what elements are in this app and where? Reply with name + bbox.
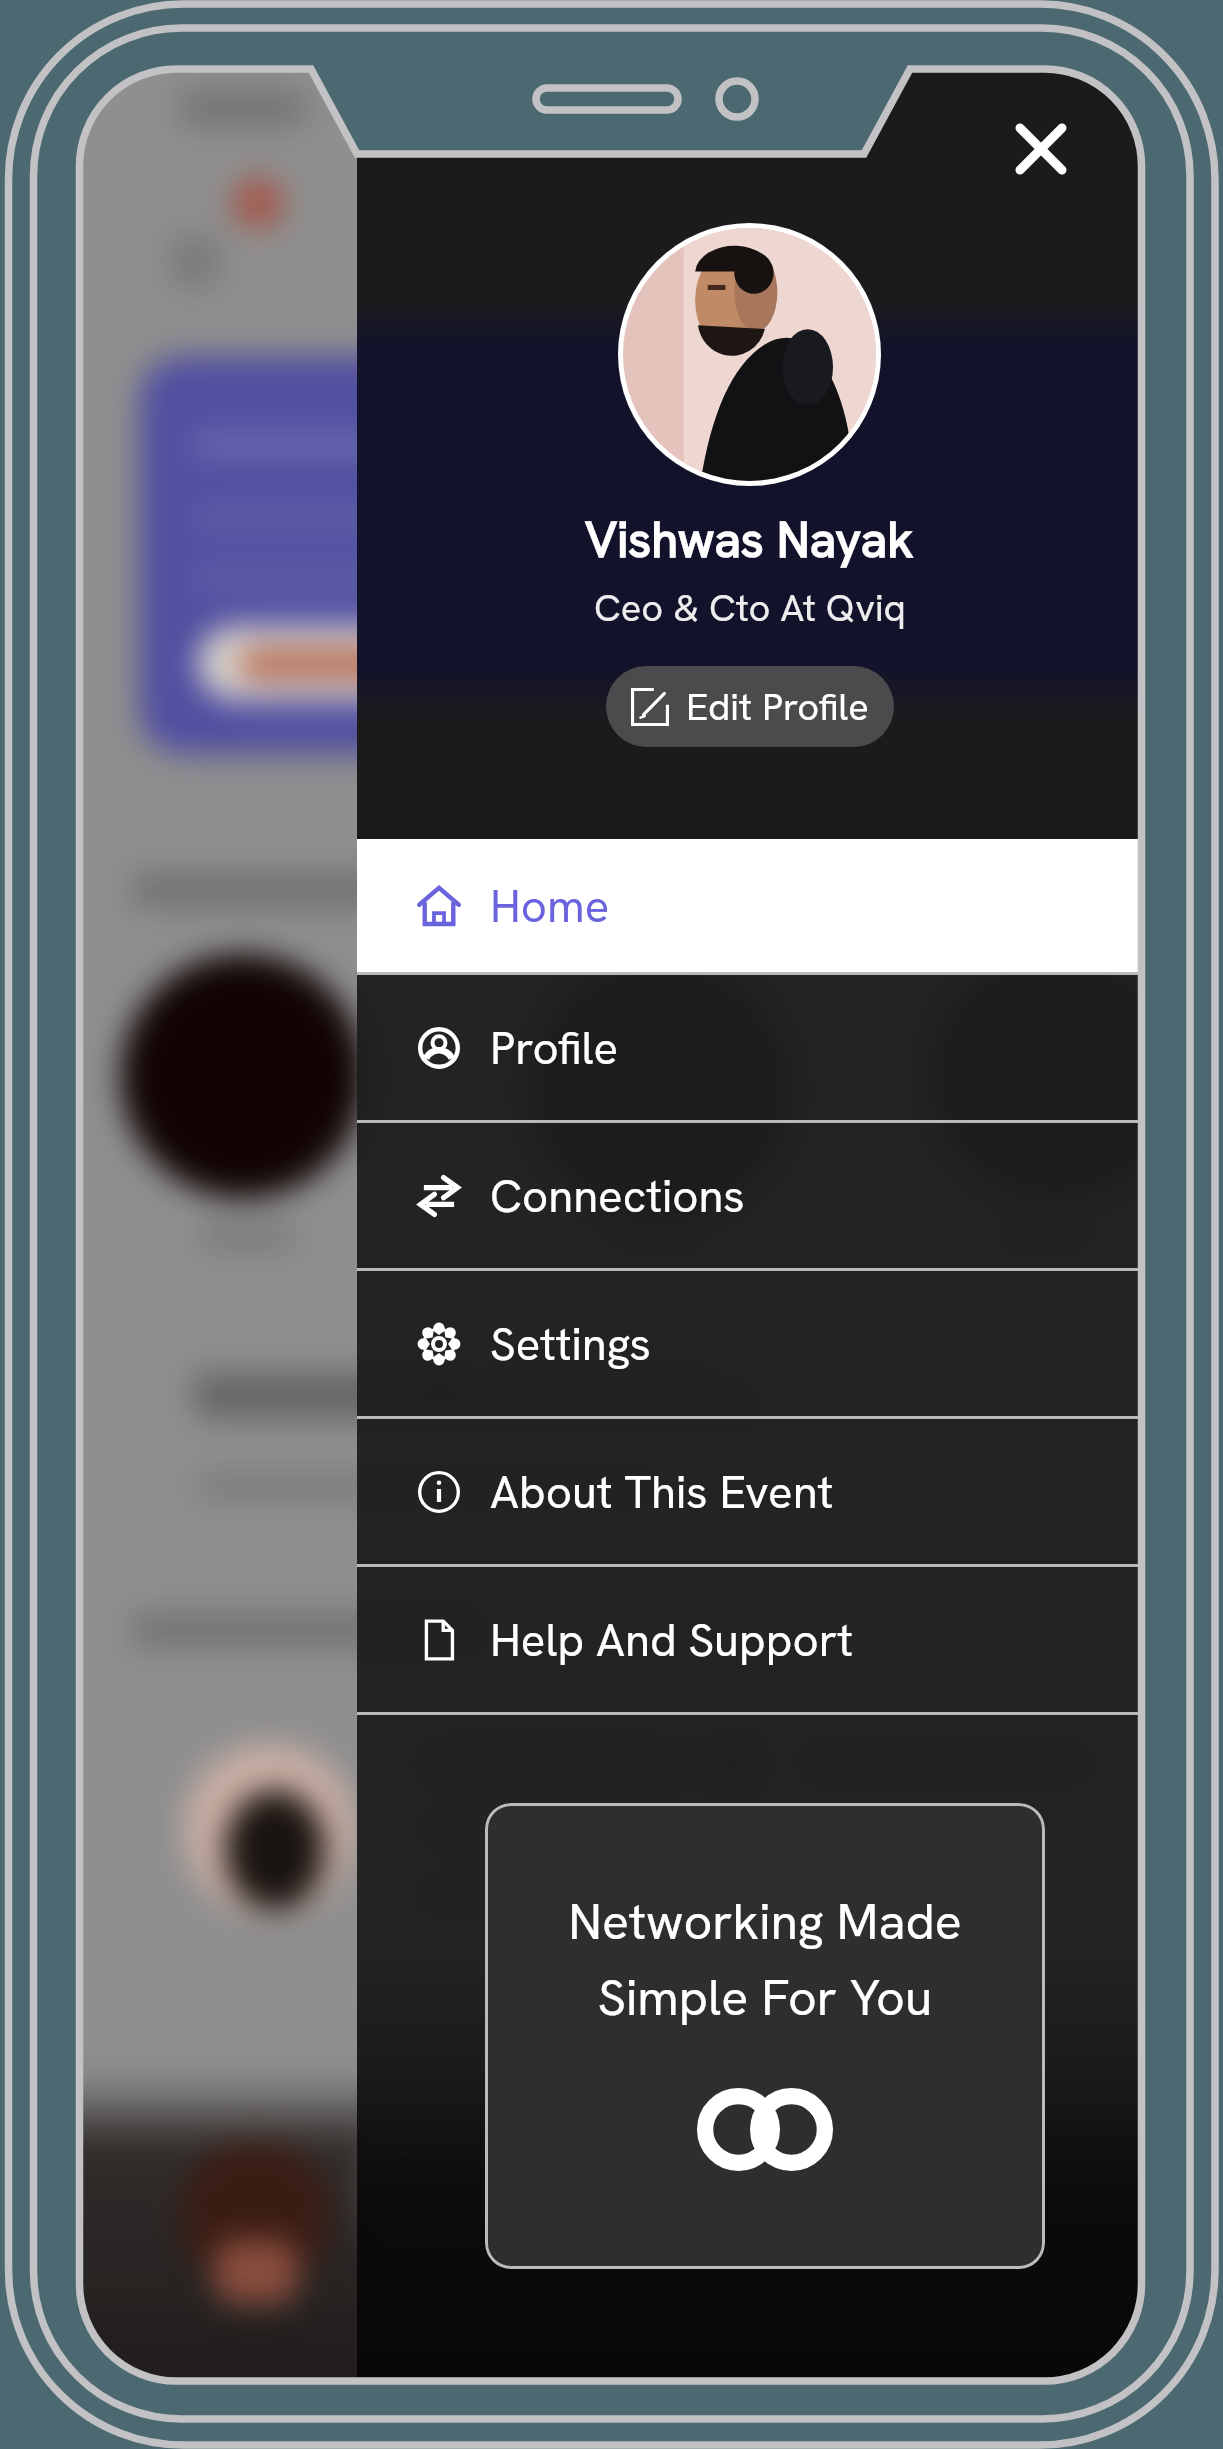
button[interactable]: Profile xyxy=(357,975,1142,1120)
button[interactable]: Connections xyxy=(357,1123,1142,1268)
staticText: Networking Made Simple For You xyxy=(568,1889,962,2030)
staticText: About This Event xyxy=(490,1462,834,1521)
staticText: Ceo & Cto At Qviq xyxy=(594,583,906,633)
staticText: Vishwas Nayak xyxy=(585,508,914,572)
button[interactable]: Help And Support xyxy=(357,1567,1142,1712)
staticText: Help And Support xyxy=(490,1610,853,1669)
staticText: Settings xyxy=(490,1314,651,1373)
button[interactable]: Close xyxy=(995,103,1087,195)
button[interactable]: Settings xyxy=(357,1271,1142,1416)
staticText: Profile xyxy=(490,1018,619,1077)
staticText: Connections xyxy=(490,1166,745,1225)
button[interactable]: Home xyxy=(357,839,1142,972)
staticText: Home xyxy=(490,876,610,935)
staticText: Edit Profile xyxy=(686,682,869,732)
button[interactable]: About This Event xyxy=(357,1419,1142,1564)
button[interactable]: Edit Profile xyxy=(606,666,894,747)
